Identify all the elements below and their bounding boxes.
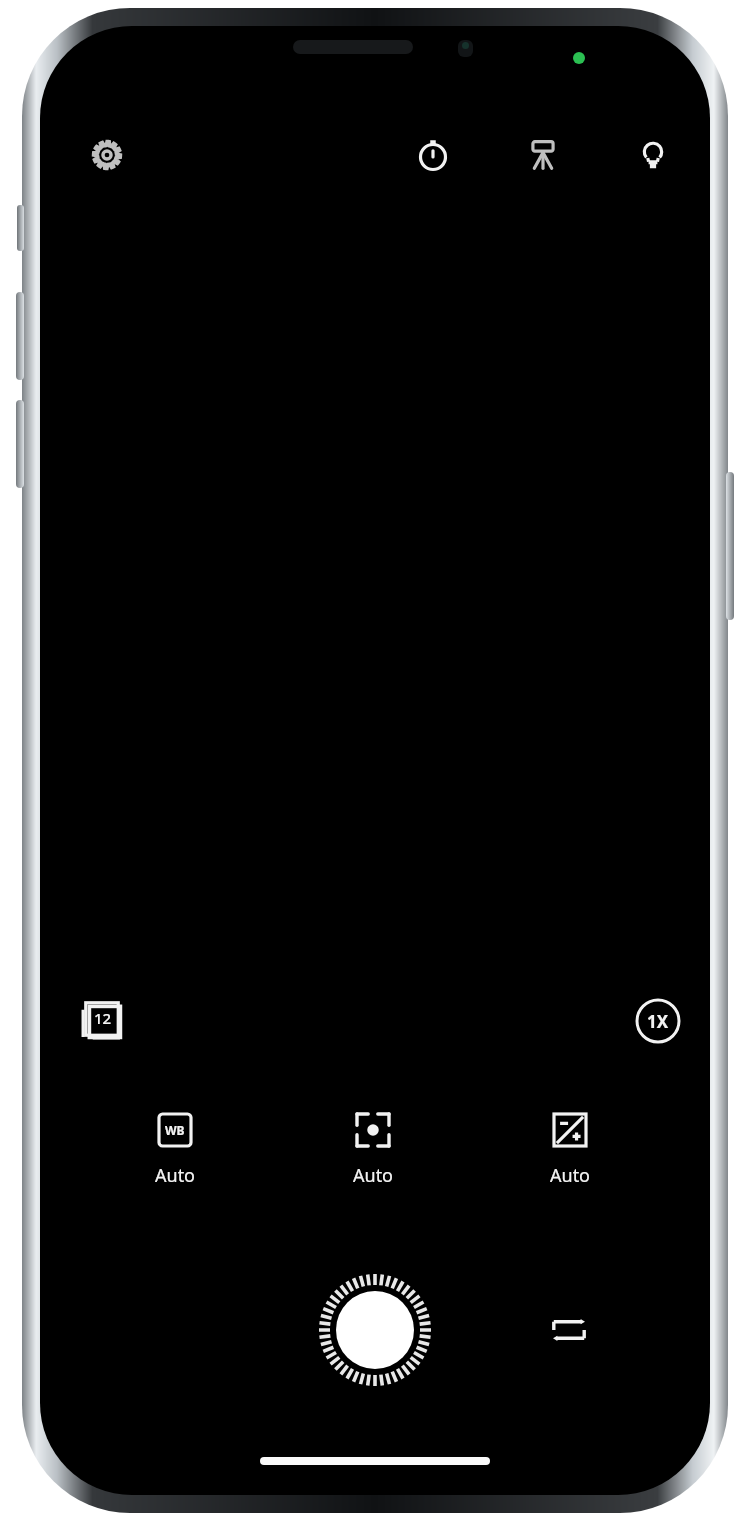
button[interactable]: Burst count 12 bbox=[66, 987, 134, 1055]
button[interactable]: Tripod mode bbox=[511, 123, 575, 187]
staticText: 1X bbox=[647, 1010, 669, 1033]
button[interactable]: Shutter bbox=[315, 1270, 435, 1390]
staticText: Auto bbox=[550, 1163, 591, 1188]
staticText: 12 bbox=[94, 1008, 112, 1028]
button[interactable]: Flash bbox=[621, 123, 685, 187]
button[interactable]: Zoom 1X bbox=[629, 992, 687, 1050]
button[interactable]: Settings bbox=[75, 123, 139, 187]
button[interactable]: White balance Auto bbox=[139, 1108, 211, 1192]
staticText: WB bbox=[165, 1122, 185, 1138]
staticText: Auto bbox=[353, 1163, 394, 1188]
staticText: Auto bbox=[155, 1163, 196, 1188]
button[interactable]: Switch camera bbox=[537, 1298, 601, 1362]
button[interactable]: Timer bbox=[401, 123, 465, 187]
button[interactable]: Metering Auto bbox=[337, 1108, 409, 1192]
button[interactable]: Exposure compensation Auto bbox=[534, 1108, 606, 1192]
